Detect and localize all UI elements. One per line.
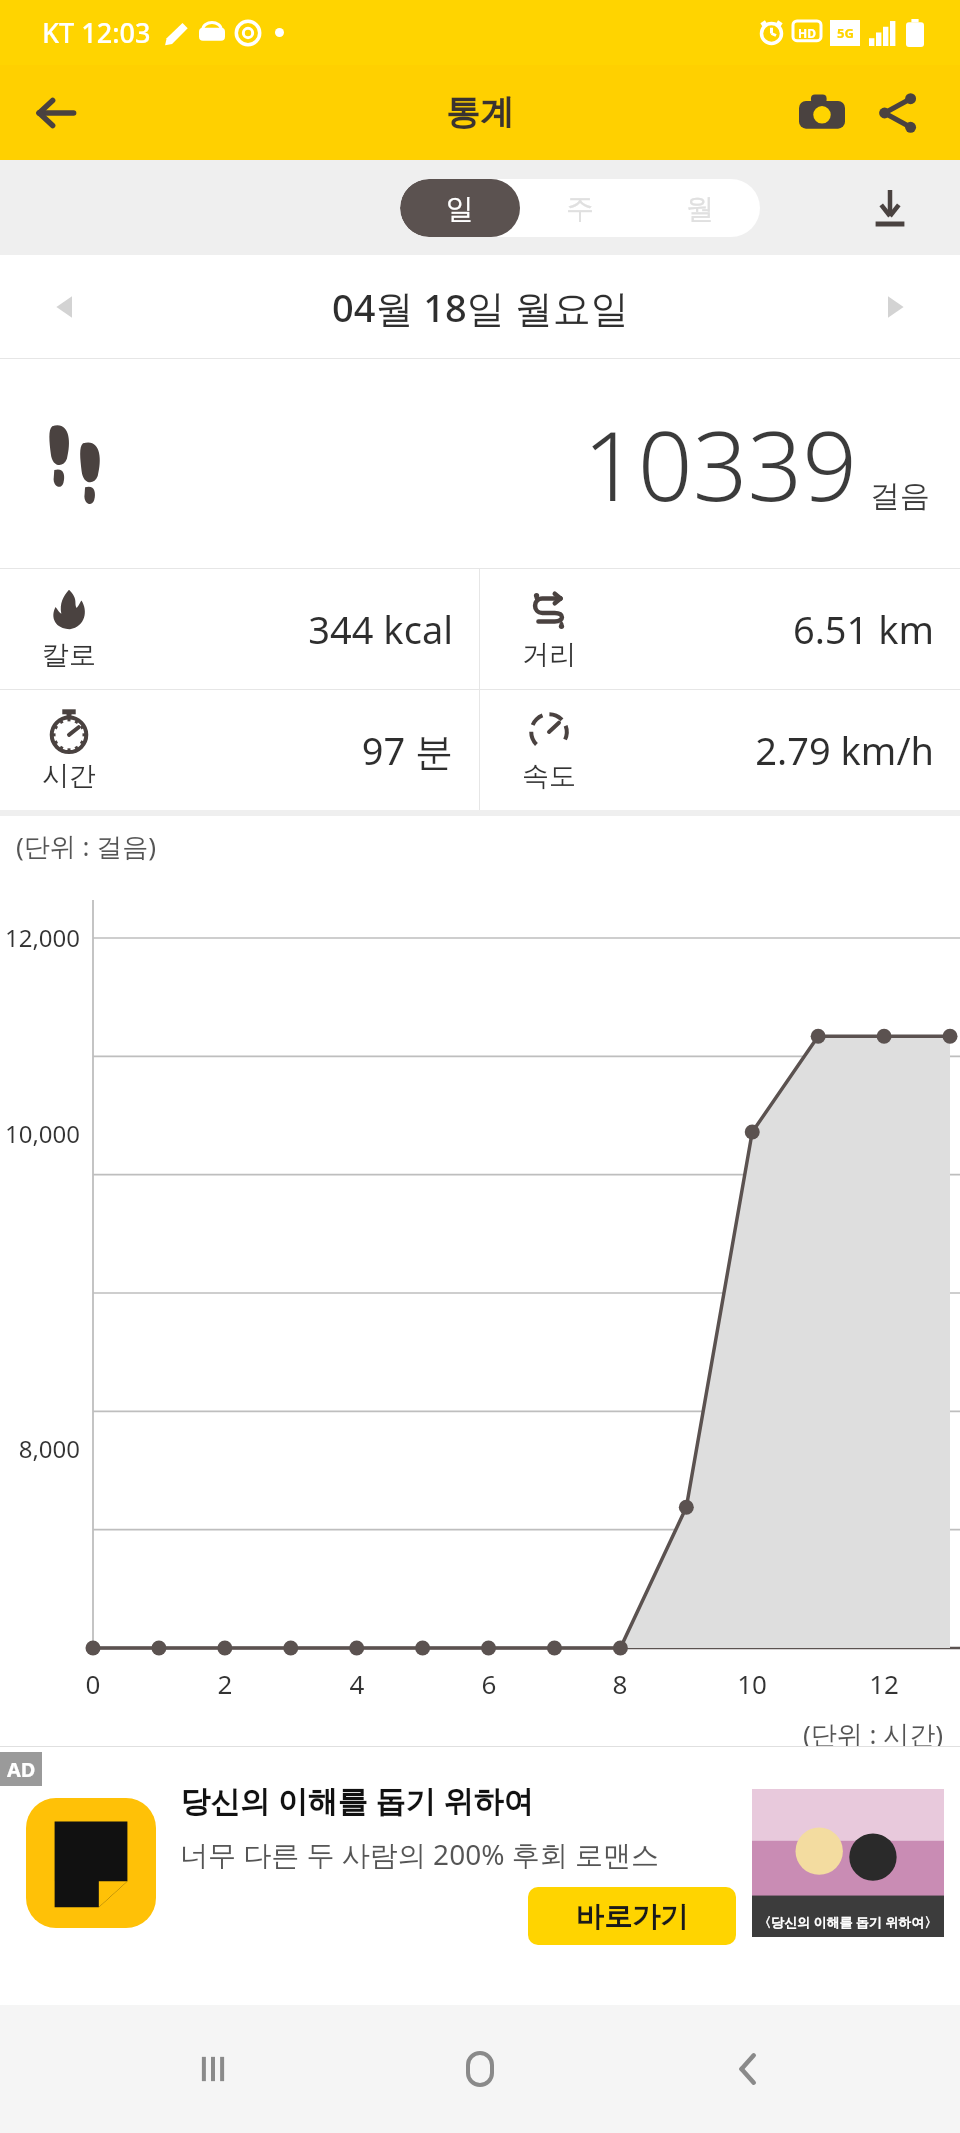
button[interactable]: 당신의 이해를 돕기 위하여 [26,1780,944,1945]
staticText: 2.79 km/h [480,724,934,776]
staticText: 시간 [42,759,96,793]
button[interactable]: 바로가기 [528,1887,736,1945]
staticText: 〈당신의 이해를 돕기 위하여〉 [758,1913,938,1931]
button[interactable]: 칼로 [0,569,479,689]
staticText: 거리 [522,638,576,672]
staticText: 걸음 [870,477,930,515]
staticText: 통계 [446,91,514,134]
button[interactable]: Next day [858,271,930,343]
staticText: 04월 18일 월요일 [332,281,629,333]
button[interactable]: 주 [520,179,640,237]
staticText: 10 [732,1666,772,1701]
staticText: AD [7,1756,36,1783]
staticText: 12 [864,1666,904,1701]
staticText: 월 [686,191,714,226]
button[interactable]: Download [856,174,924,242]
button[interactable]: 월 [640,179,760,237]
staticText: 일 [446,191,474,226]
staticText: 97 분 [0,724,453,776]
staticText: (단위 : 걸음) [16,828,157,864]
button[interactable]: 시간 [0,690,479,810]
staticText: 0 [73,1666,113,1701]
staticText: 6.51 km [480,603,934,655]
button[interactable]: Home [425,2014,535,2124]
staticText: 10,000 [0,1117,80,1150]
staticText: (단위 : 시간) [803,1716,944,1746]
staticText: 2 [205,1666,245,1701]
button[interactable]: Recent apps [158,2014,268,2124]
staticText: HD [798,25,816,41]
button[interactable]: Screenshot [786,77,858,149]
button[interactable]: Back [693,2014,803,2124]
staticText: 너무 다른 두 사람의 200% 후회 로맨스 [180,1835,659,1873]
button[interactable]: 일 [400,179,520,237]
staticText: 주 [566,191,594,226]
button[interactable]: 거리 [480,569,960,689]
staticText: 8 [600,1666,640,1701]
staticText: 10339 [583,398,858,529]
staticText: 6 [469,1666,509,1701]
button[interactable]: Back [20,77,92,149]
button[interactable]: 속도 [480,690,960,810]
staticText: 344 kcal [0,603,453,655]
staticText: KT 12:03 [42,14,151,51]
staticText: 속도 [522,759,576,793]
staticText: 8,000 [0,1432,80,1465]
staticText: 당신의 이해를 돕기 위하여 [180,1780,534,1821]
button[interactable]: Previous day [30,271,102,343]
staticText: 4 [337,1666,377,1701]
staticText: 12,000 [0,921,80,954]
staticText: 바로가기 [576,1899,688,1934]
button[interactable]: Share [862,77,934,149]
staticText: 5G [837,24,854,42]
staticText: 칼로 [42,638,96,672]
